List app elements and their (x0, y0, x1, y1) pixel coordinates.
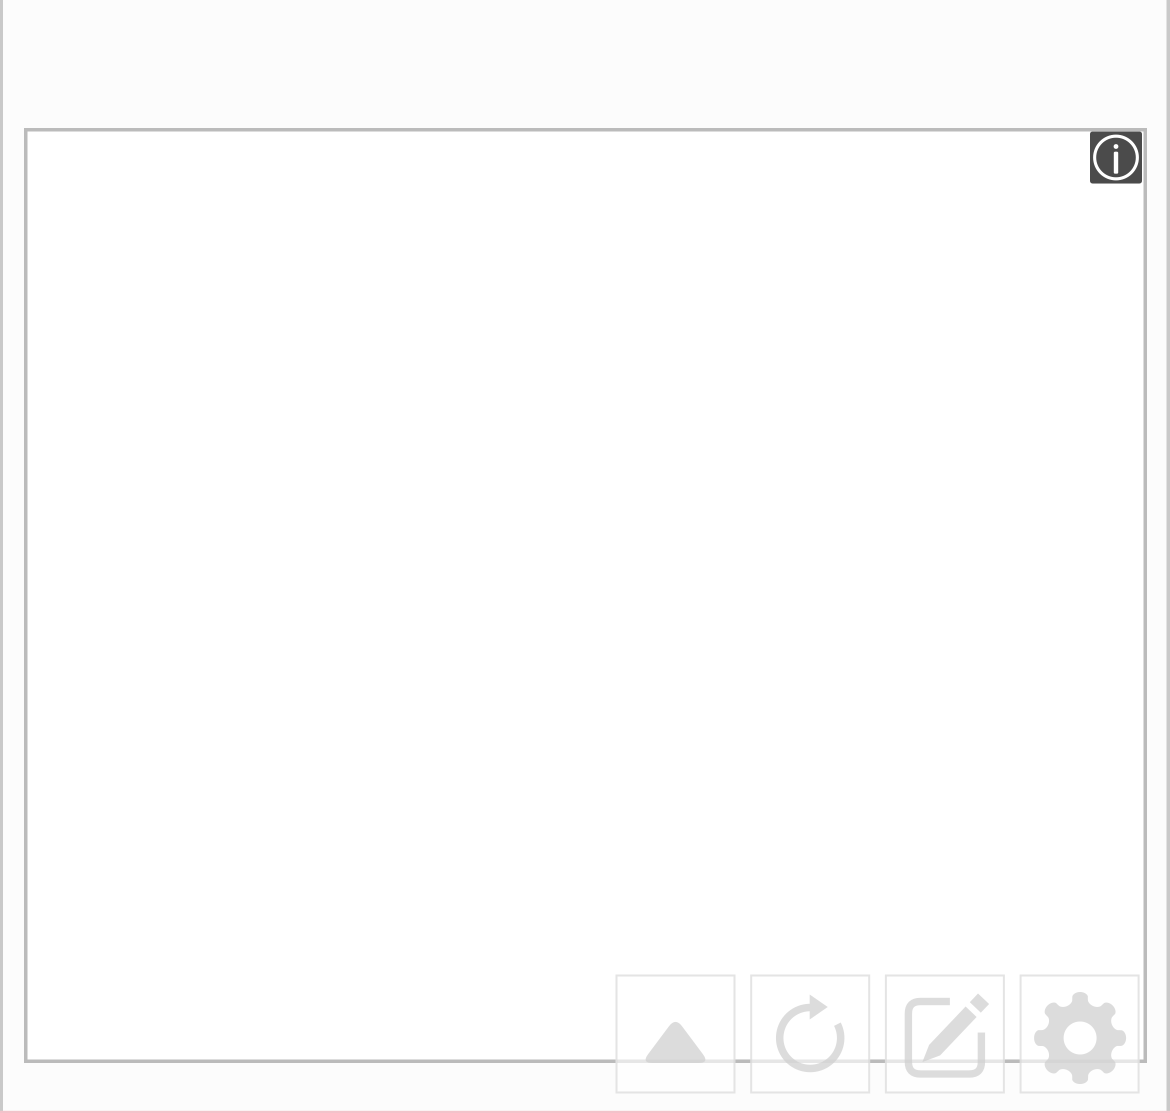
button[interactable]: Settings (1021, 975, 1139, 1092)
button[interactable]: Reload (751, 975, 869, 1092)
button[interactable]: Info (1090, 131, 1142, 183)
button[interactable]: Compose (886, 975, 1004, 1092)
button[interactable]: Share (616, 975, 734, 1092)
